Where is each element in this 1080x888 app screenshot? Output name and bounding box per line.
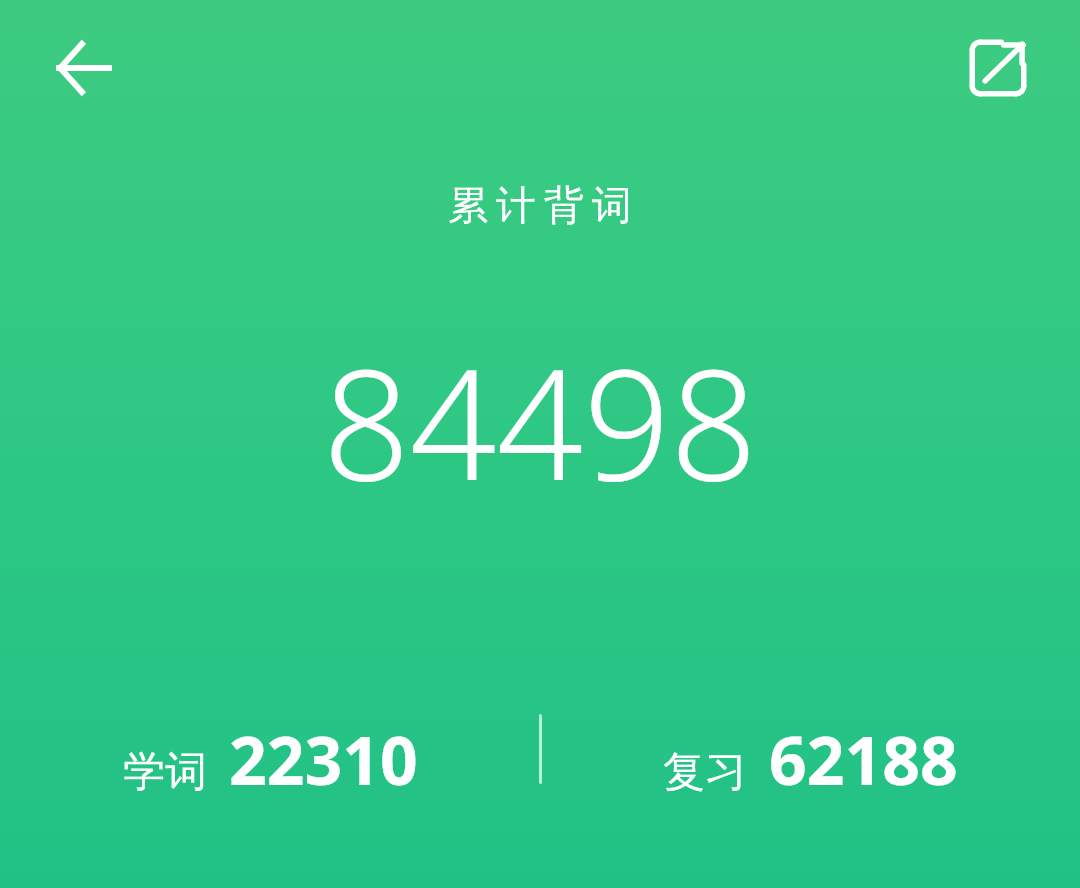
button[interactable]: 复习: [540, 714, 1080, 804]
staticText: 学词: [123, 746, 207, 799]
button[interactable]: Share: [958, 28, 1038, 108]
staticText: 累计背词: [444, 180, 636, 230]
button[interactable]: Back: [44, 28, 124, 108]
button[interactable]: 学词: [0, 714, 540, 804]
staticText: 84498: [323, 318, 757, 525]
staticText: 复习: [663, 746, 747, 799]
staticText: 22310: [229, 714, 418, 804]
staticText: 62188: [769, 714, 958, 804]
